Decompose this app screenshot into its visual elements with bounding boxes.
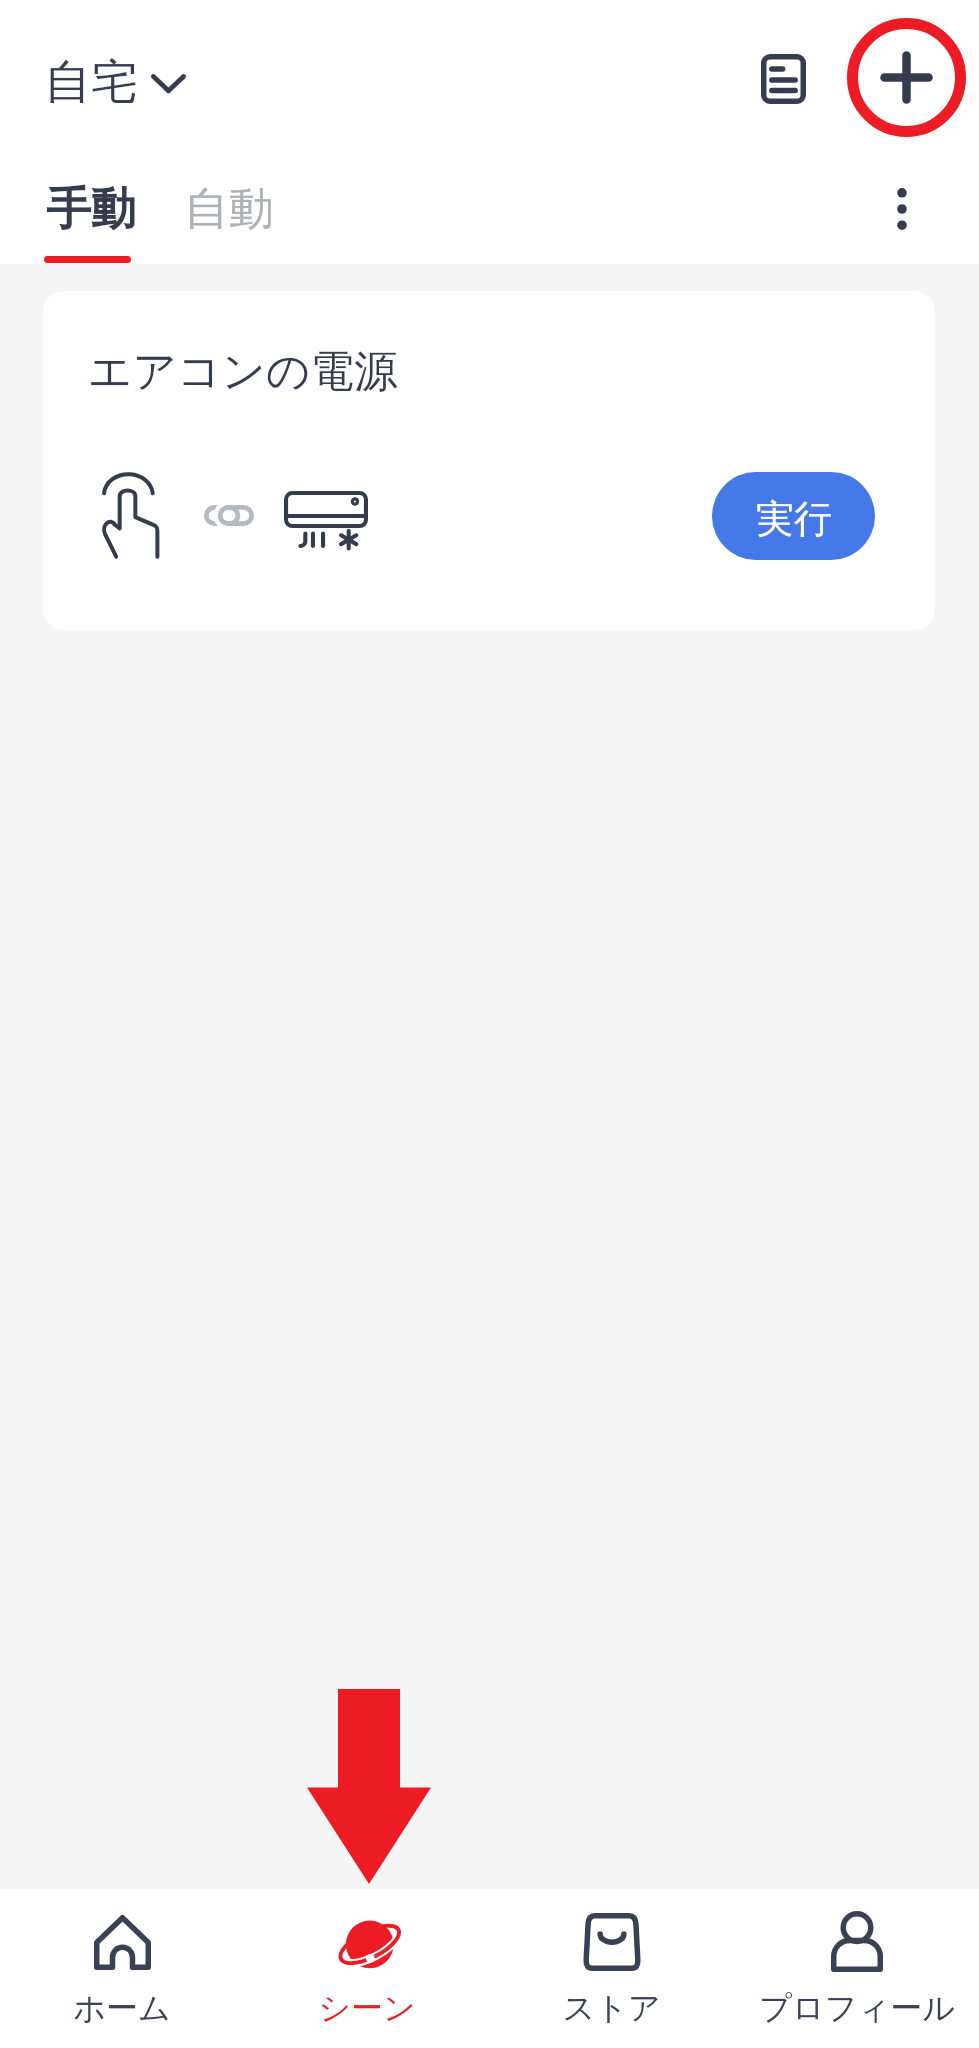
staticText: 自宅 bbox=[44, 53, 138, 112]
staticText: 手動 bbox=[46, 181, 136, 238]
staticText: エアコンの電源 bbox=[88, 344, 398, 399]
button[interactable]: 実行 bbox=[712, 472, 875, 560]
button[interactable]: ホーム bbox=[0, 1891, 244, 2048]
button[interactable]: 自宅 bbox=[34, 45, 196, 120]
button[interactable]: Scene list bbox=[733, 29, 833, 129]
button[interactable]: Add scene bbox=[847, 18, 966, 137]
staticText: プロフィール bbox=[759, 1988, 955, 2028]
button[interactable]: エアコンの電源 bbox=[43, 291, 935, 630]
button[interactable]: 手動 bbox=[35, 162, 147, 250]
button[interactable]: プロフィール bbox=[734, 1891, 979, 2048]
button[interactable]: ストア bbox=[489, 1891, 734, 2048]
staticText: 自動 bbox=[184, 181, 274, 238]
staticText: シーン bbox=[318, 1988, 416, 2028]
staticText: ホーム bbox=[73, 1988, 171, 2028]
button[interactable]: More options bbox=[856, 163, 948, 255]
button[interactable]: シーン bbox=[244, 1891, 489, 2048]
staticText: 実行 bbox=[756, 495, 832, 543]
staticText: ストア bbox=[562, 1988, 661, 2028]
button[interactable]: 自動 bbox=[173, 162, 285, 250]
